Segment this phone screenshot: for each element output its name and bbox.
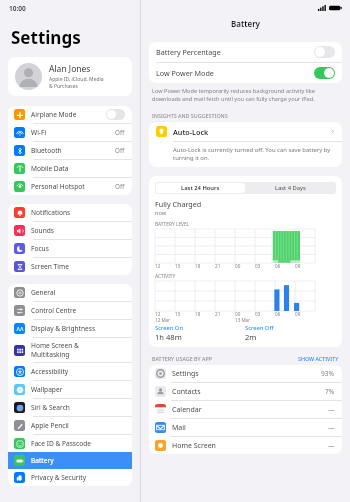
staticText: Apple ID, iCloud, Media — [49, 76, 104, 83]
staticText: Home Screen & — [31, 341, 79, 350]
staticText: Off — [115, 182, 125, 191]
staticText: 10:00 — [9, 4, 26, 13]
button[interactable]: Contacts — [149, 383, 342, 400]
button[interactable]: SHOW ACTIVITY — [298, 355, 339, 362]
staticText: — — [328, 405, 335, 414]
staticText: — — [328, 441, 335, 450]
staticText: Auto-Lock — [173, 127, 209, 137]
button[interactable]: Last 24 Hours — [156, 183, 245, 193]
staticText: Home Screen — [172, 441, 216, 451]
button[interactable]: Siri & Search — [8, 399, 132, 416]
staticText: 1h 48m — [155, 332, 182, 342]
staticText: 18 — [195, 263, 201, 269]
staticText: now — [155, 209, 167, 217]
staticText: Mail — [172, 423, 186, 433]
staticText: Siri & Search — [31, 403, 70, 412]
staticText: 00 — [235, 263, 241, 269]
button[interactable]: Calendar — [149, 401, 342, 418]
staticText: 21 — [215, 263, 221, 269]
button[interactable]: Apple Pencil — [8, 417, 132, 434]
staticText: 18 — [195, 311, 201, 317]
staticText: Fully Charged — [155, 199, 202, 209]
staticText: Contacts — [172, 387, 201, 397]
button[interactable]: Airplane Mode — [8, 106, 132, 123]
staticText: 00 — [235, 311, 241, 317]
staticText: Airplane Mode — [31, 110, 77, 119]
staticText: Low Power Mode temporarily reduces backg… — [152, 87, 315, 95]
button[interactable]: Screen Time — [8, 258, 132, 275]
staticText: 09 — [295, 263, 301, 269]
staticText: Settings — [11, 26, 81, 49]
staticText: ACTIVITY — [155, 273, 176, 280]
staticText: 06 — [275, 263, 281, 269]
button[interactable]: Battery — [8, 452, 132, 469]
button[interactable]: Last 4 Days — [245, 183, 335, 193]
button[interactable]: Sounds — [8, 222, 132, 239]
staticText: turning it on. — [173, 154, 210, 162]
staticText: Screen Time — [31, 262, 69, 271]
staticText: BATTERY USAGE BY APP — [152, 355, 212, 362]
staticText: Battery — [31, 456, 54, 465]
staticText: 03 — [255, 311, 261, 317]
staticText: 7% — [325, 387, 335, 396]
staticText: Display & Brightness — [31, 324, 96, 333]
button[interactable]: Display & Brightness — [8, 320, 132, 337]
staticText: Low Power Mode — [156, 68, 214, 78]
staticText: 2m — [245, 332, 257, 342]
staticText: 06 — [275, 311, 281, 317]
button[interactable]: Mobile Data — [8, 160, 132, 177]
staticText: Personal Hotspot — [31, 182, 85, 191]
staticText: Auto-Lock is currently turned off. You c… — [173, 146, 331, 154]
staticText: 09 — [295, 311, 301, 317]
staticText: Last 24 Hours — [181, 184, 220, 192]
staticText: Apple Pencil — [31, 421, 69, 430]
staticText: Screen On — [155, 324, 183, 332]
staticText: 12 — [155, 263, 161, 269]
staticText: General — [31, 288, 56, 297]
button[interactable]: Bluetooth — [8, 142, 132, 159]
staticText: Mobile Data — [31, 164, 69, 173]
button[interactable]: Notifications — [8, 204, 132, 221]
button[interactable]: Home Screen — [149, 437, 342, 454]
button[interactable]: Alan Jones — [8, 57, 132, 96]
button[interactable]: Accessibility — [8, 363, 132, 380]
staticText: 13 Mar — [235, 317, 251, 323]
staticText: Alan Jones — [49, 63, 91, 75]
button[interactable]: Settings — [149, 365, 342, 382]
staticText: Wi-Fi — [31, 128, 47, 137]
button[interactable]: Low Power Mode — [149, 63, 342, 83]
button[interactable]: Wi-Fi — [8, 124, 132, 141]
staticText: Multitasking — [31, 350, 70, 359]
staticText: Off — [115, 128, 125, 137]
button[interactable]: Personal Hotspot — [8, 178, 132, 195]
button[interactable]: Privacy & Security — [8, 469, 132, 486]
button[interactable]: Focus — [8, 240, 132, 257]
staticText: Calendar — [172, 405, 202, 415]
staticText: 15 — [175, 263, 181, 269]
staticText: Focus — [31, 244, 49, 253]
button[interactable]: Auto-Lock — [149, 122, 342, 141]
staticText: Face ID & Passcode — [31, 439, 91, 448]
staticText: 12 Mar — [155, 317, 171, 323]
button[interactable]: Wallpaper — [8, 381, 132, 398]
button[interactable]: Face ID & Passcode — [8, 435, 132, 452]
staticText: 21 — [215, 311, 221, 317]
staticText: 93% — [321, 369, 335, 378]
staticText: Last 4 Days — [275, 184, 306, 192]
staticText: Accessibility — [31, 367, 69, 376]
staticText: Notifications — [31, 208, 71, 217]
button[interactable]: General — [8, 284, 132, 301]
button[interactable]: Battery Percentage — [149, 42, 342, 62]
staticText: SHOW ACTIVITY — [298, 355, 339, 362]
staticText: 03 — [255, 263, 261, 269]
staticText: Wallpaper — [31, 385, 63, 394]
staticText: downloads and mail fetch until you can f… — [152, 95, 315, 103]
staticText: Sounds — [31, 226, 54, 235]
staticText: Settings — [172, 369, 199, 379]
staticText: BATTERY LEVEL — [155, 221, 190, 228]
button[interactable]: Home Screen & — [8, 338, 132, 362]
button[interactable]: Control Centre — [8, 302, 132, 319]
staticText: Control Centre — [31, 306, 77, 315]
button[interactable]: Mail — [149, 419, 342, 436]
staticText: — — [328, 423, 335, 432]
